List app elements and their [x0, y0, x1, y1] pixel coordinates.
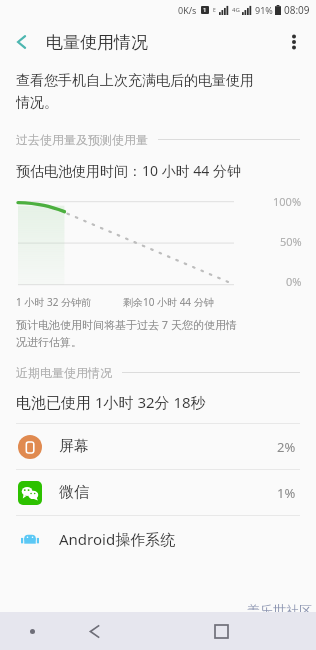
staticText: 1 小时 32 分钟前	[16, 295, 91, 309]
button[interactable]: Back	[64, 612, 127, 650]
button[interactable]: 微信	[0, 470, 316, 515]
staticText: 屏幕	[59, 437, 89, 456]
button[interactable]: Back	[0, 20, 44, 64]
staticText: 电池已使用 1小时 32分 18秒	[16, 392, 206, 412]
staticText: 近期电量使用情况	[16, 365, 112, 380]
staticText: 剩余10 小时 44 分钟	[123, 295, 214, 309]
staticText: 50%	[280, 234, 302, 249]
staticText: 查看您手机自上次充满电后的电量使用 情况。	[16, 72, 254, 112]
staticText: 91%	[255, 4, 273, 16]
staticText: Android操作系统	[59, 529, 176, 549]
staticText: 电量使用情况	[46, 32, 148, 53]
staticText: 过去使用量及预测使用量	[16, 132, 148, 147]
button[interactable]: Recent apps indicator	[0, 612, 64, 650]
staticText: E	[213, 7, 216, 14]
button[interactable]: 屏幕	[0, 424, 316, 469]
staticText: 0%	[286, 274, 302, 289]
button[interactable]: Android操作系统	[0, 516, 316, 561]
staticText: 预估电池使用时间：10 小时 44 分钟	[16, 161, 241, 180]
staticText: 2%	[277, 438, 296, 456]
staticText: 0K/s	[178, 4, 197, 16]
staticText: 1	[203, 6, 207, 14]
staticText: 100%	[273, 194, 302, 209]
staticText: 预计电池使用时间将基于过去 7 天您的使用情 况进行估算。	[16, 317, 238, 349]
staticText: 08:09	[284, 3, 310, 17]
staticText: 4G	[232, 6, 240, 14]
button[interactable]: Recents	[190, 612, 253, 650]
button[interactable]: More options	[272, 20, 316, 64]
staticText: 1%	[277, 484, 296, 502]
staticText: 微信	[59, 483, 89, 502]
staticText: 盖乐世社区	[247, 602, 312, 618]
